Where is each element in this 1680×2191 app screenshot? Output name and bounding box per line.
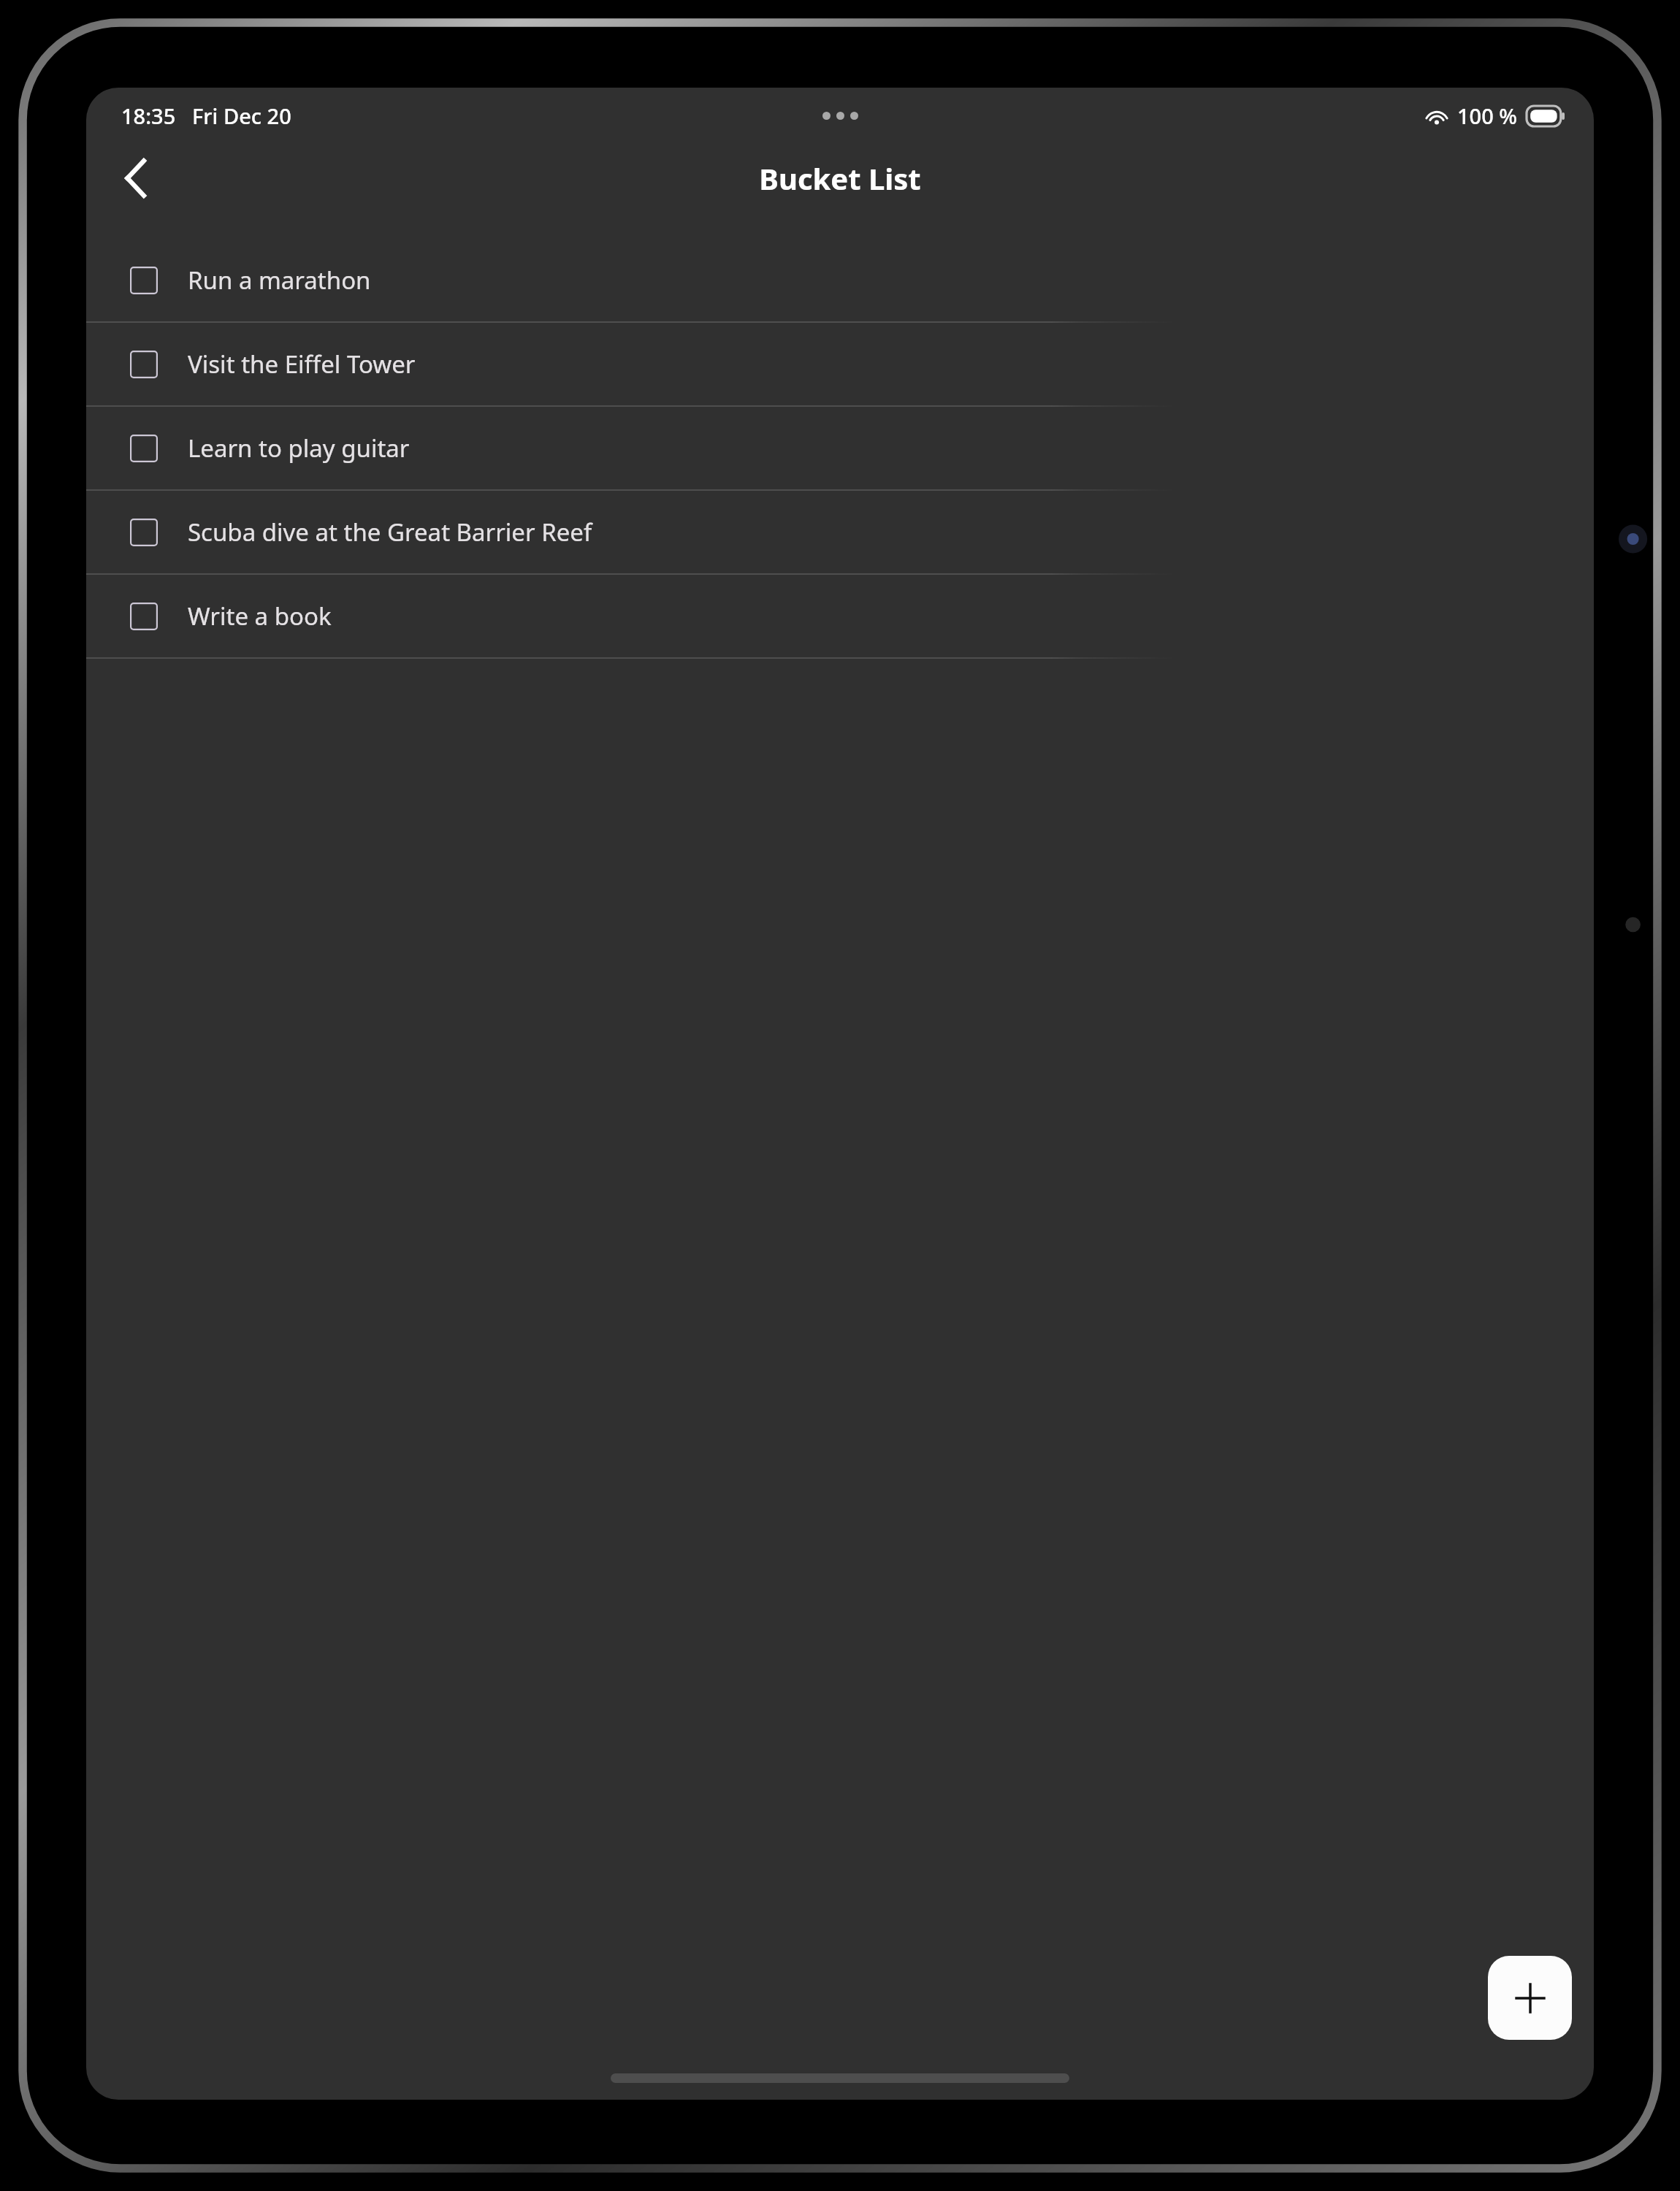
staticText: Scuba dive at the Great Barrier Reef <box>188 516 592 548</box>
staticText: 100 % <box>1457 102 1518 130</box>
staticText: Bucket List <box>759 158 921 198</box>
staticText: Run a marathon <box>188 264 371 297</box>
button[interactable]: Add item <box>1488 1956 1572 2040</box>
button[interactable]: Learn to play guitar <box>86 407 1594 491</box>
staticText: Write a book <box>188 600 332 632</box>
button[interactable]: Scuba dive at the Great Barrier Reef <box>86 491 1594 575</box>
button[interactable]: Run a marathon <box>86 239 1594 323</box>
staticText: Learn to play guitar <box>188 432 410 464</box>
button[interactable]: Visit the Eiffel Tower <box>86 323 1594 407</box>
staticText: Fri Dec 20 <box>192 102 291 130</box>
staticText: 18:35 <box>121 102 176 130</box>
button[interactable]: Write a book <box>86 575 1594 659</box>
staticText: Visit the Eiffel Tower <box>188 348 416 381</box>
button[interactable]: Back <box>104 146 168 210</box>
